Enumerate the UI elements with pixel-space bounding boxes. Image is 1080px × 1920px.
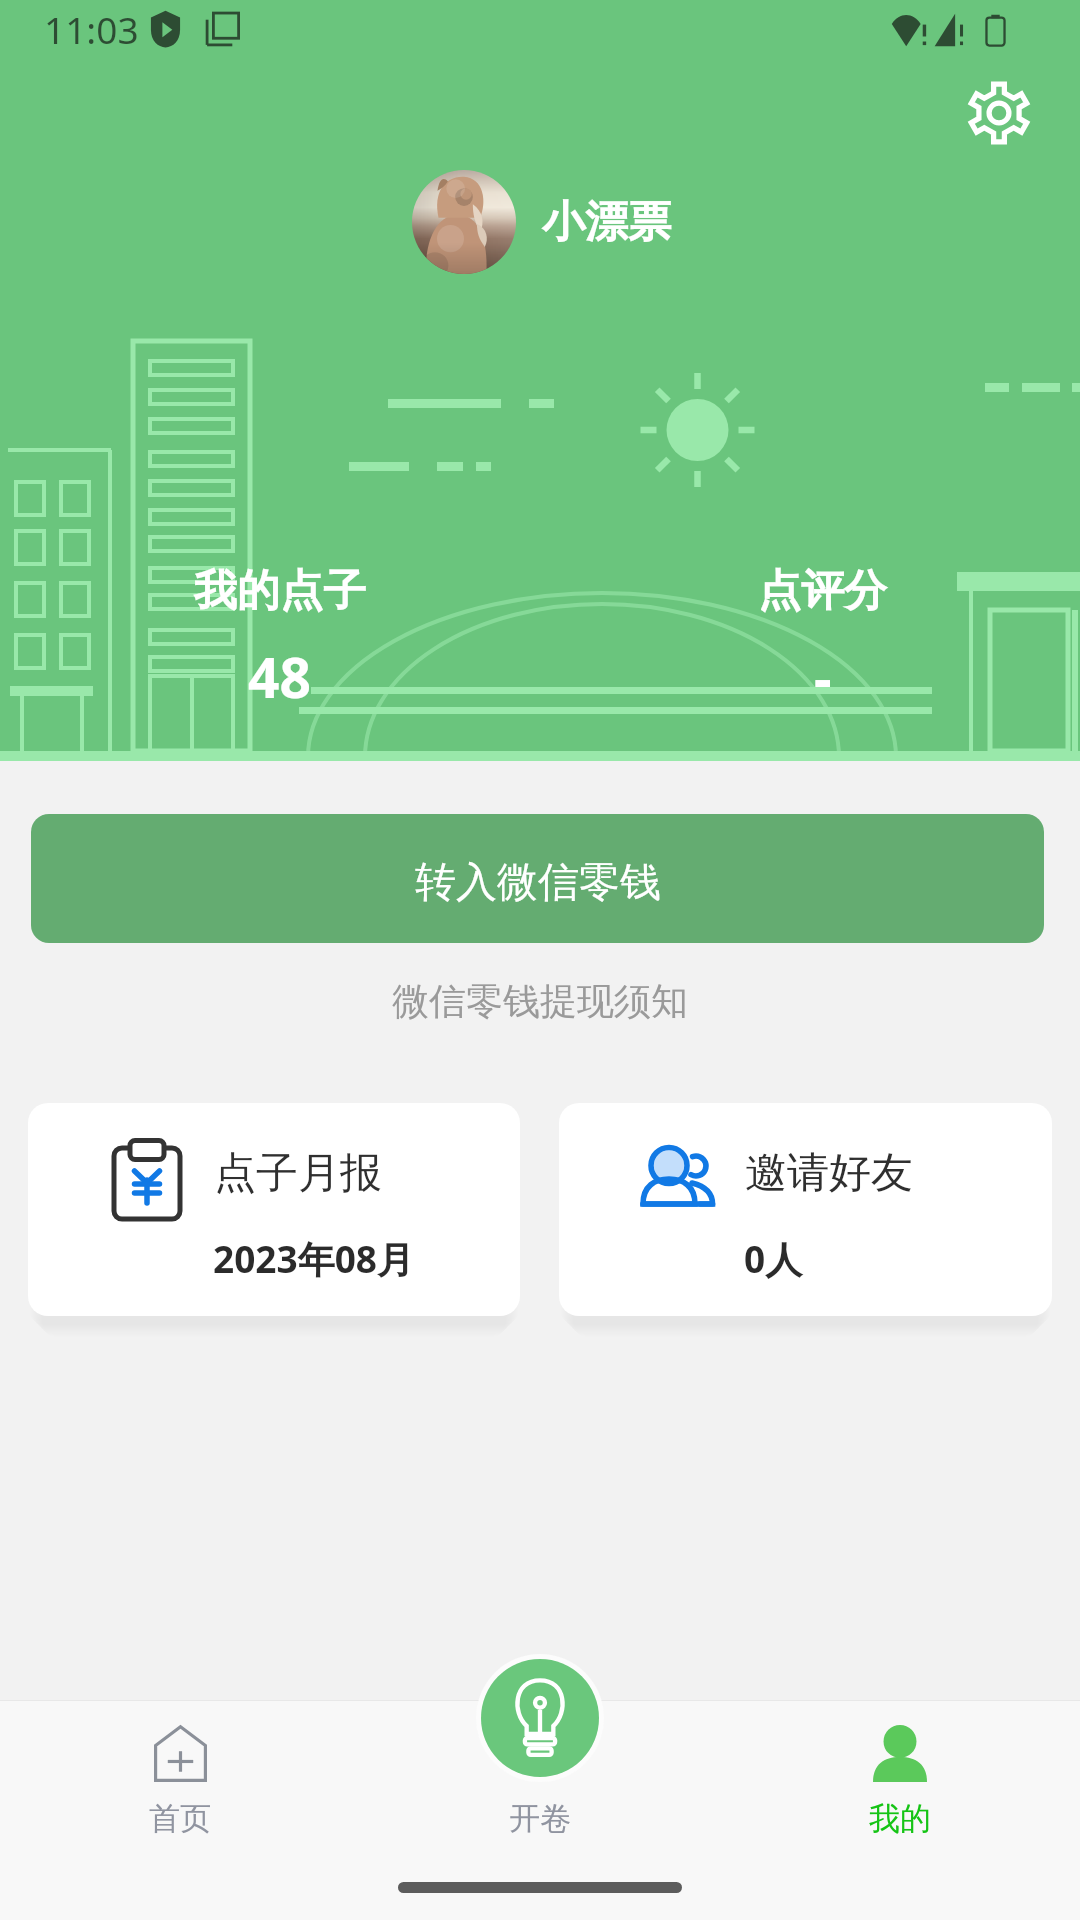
staticText: 0人: [744, 1233, 803, 1284]
button[interactable]: 开卷: [481, 1659, 599, 1777]
button[interactable]: 微信零钱提现须知: [380, 972, 700, 1031]
button[interactable]: 开卷: [360, 1700, 720, 1875]
staticText: 点子月报: [214, 1147, 382, 1200]
button[interactable]: 邀请好友: [559, 1103, 1052, 1316]
button[interactable]: Settings: [962, 76, 1036, 150]
staticText: -: [814, 639, 832, 714]
staticText: 我的: [869, 1799, 931, 1838]
staticText: 11:03: [44, 4, 139, 54]
button[interactable]: 点子月报: [28, 1103, 520, 1316]
staticText: 开卷: [509, 1799, 571, 1838]
staticText: 微信零钱提现须知: [392, 978, 688, 1025]
button[interactable]: 首页: [0, 1700, 360, 1875]
staticText: 首页: [149, 1799, 211, 1838]
staticText: 48: [248, 639, 311, 714]
button[interactable]: 转入微信零钱: [31, 814, 1044, 943]
staticText: 2023年08月: [213, 1233, 414, 1284]
staticText: 邀请好友: [745, 1147, 913, 1200]
staticText: 我的点子: [194, 564, 366, 618]
staticText: 小漂票: [542, 195, 671, 249]
button[interactable]: 我的: [720, 1700, 1080, 1875]
staticText: 点评分: [758, 564, 887, 618]
staticText: 转入微信零钱: [415, 857, 661, 909]
